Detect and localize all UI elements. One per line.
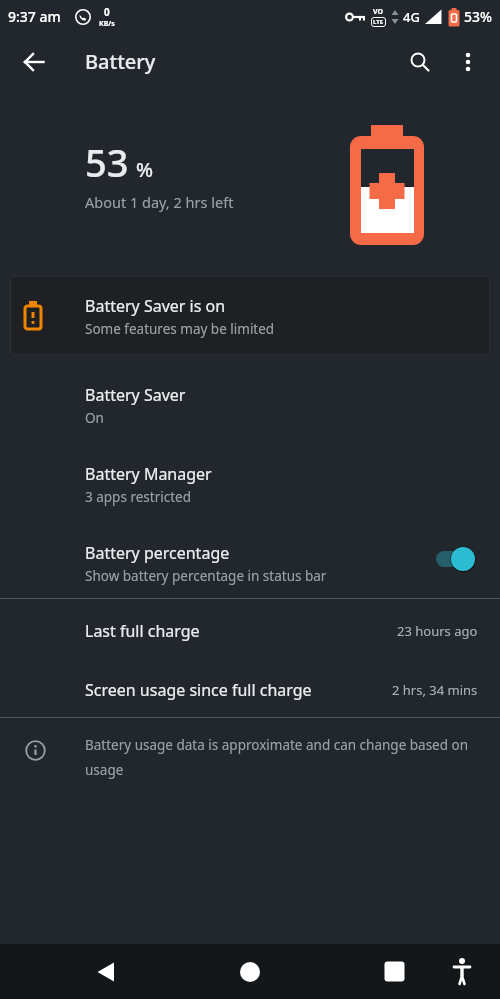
button[interactable]: Battery Saver is on (10, 276, 490, 355)
button[interactable]: Battery Manager (0, 440, 500, 519)
button[interactable] (10, 38, 58, 86)
staticText: Last full charge (85, 620, 200, 642)
staticText: VO (373, 7, 384, 17)
button[interactable]: Last full charge (0, 599, 500, 658)
staticText: Show battery percentage in status bar (85, 567, 327, 585)
staticText: Battery (85, 48, 156, 75)
staticText: Battery usage data is approximate and ca… (85, 736, 469, 754)
staticText: usage (85, 761, 124, 779)
staticText: KB/s (99, 19, 115, 29)
button[interactable]: Battery Saver (0, 361, 500, 440)
staticText: Some features may be limited (85, 320, 275, 338)
staticText: On (85, 409, 104, 427)
staticText: Battery Saver is on (85, 295, 226, 317)
button[interactable] (83, 944, 127, 999)
staticText: 3 apps restricted (85, 488, 191, 506)
button[interactable] (396, 38, 444, 86)
button[interactable]: Screen usage since full charge (0, 658, 500, 717)
button[interactable] (228, 944, 272, 999)
staticText: 2 hrs, 34 mins (392, 681, 478, 699)
button[interactable]: Battery percentage (0, 519, 500, 598)
button[interactable] (444, 38, 492, 86)
staticText: Battery Manager (85, 463, 212, 485)
button[interactable] (372, 944, 416, 999)
staticText: % (136, 156, 154, 183)
staticText: Screen usage since full charge (85, 679, 312, 701)
staticText: 23 hours ago (397, 622, 478, 640)
staticText: 53% (464, 7, 492, 26)
staticText: 0 (104, 5, 110, 19)
staticText: Battery Saver (85, 384, 186, 406)
staticText: 9:37 am (8, 7, 61, 26)
staticText: Battery percentage (85, 542, 230, 564)
staticText: 4G (403, 8, 420, 26)
button[interactable] (440, 944, 484, 999)
staticText: About 1 day, 2 hrs left (85, 192, 234, 212)
staticText: LTE (373, 18, 384, 26)
staticText: 53 (85, 136, 129, 188)
